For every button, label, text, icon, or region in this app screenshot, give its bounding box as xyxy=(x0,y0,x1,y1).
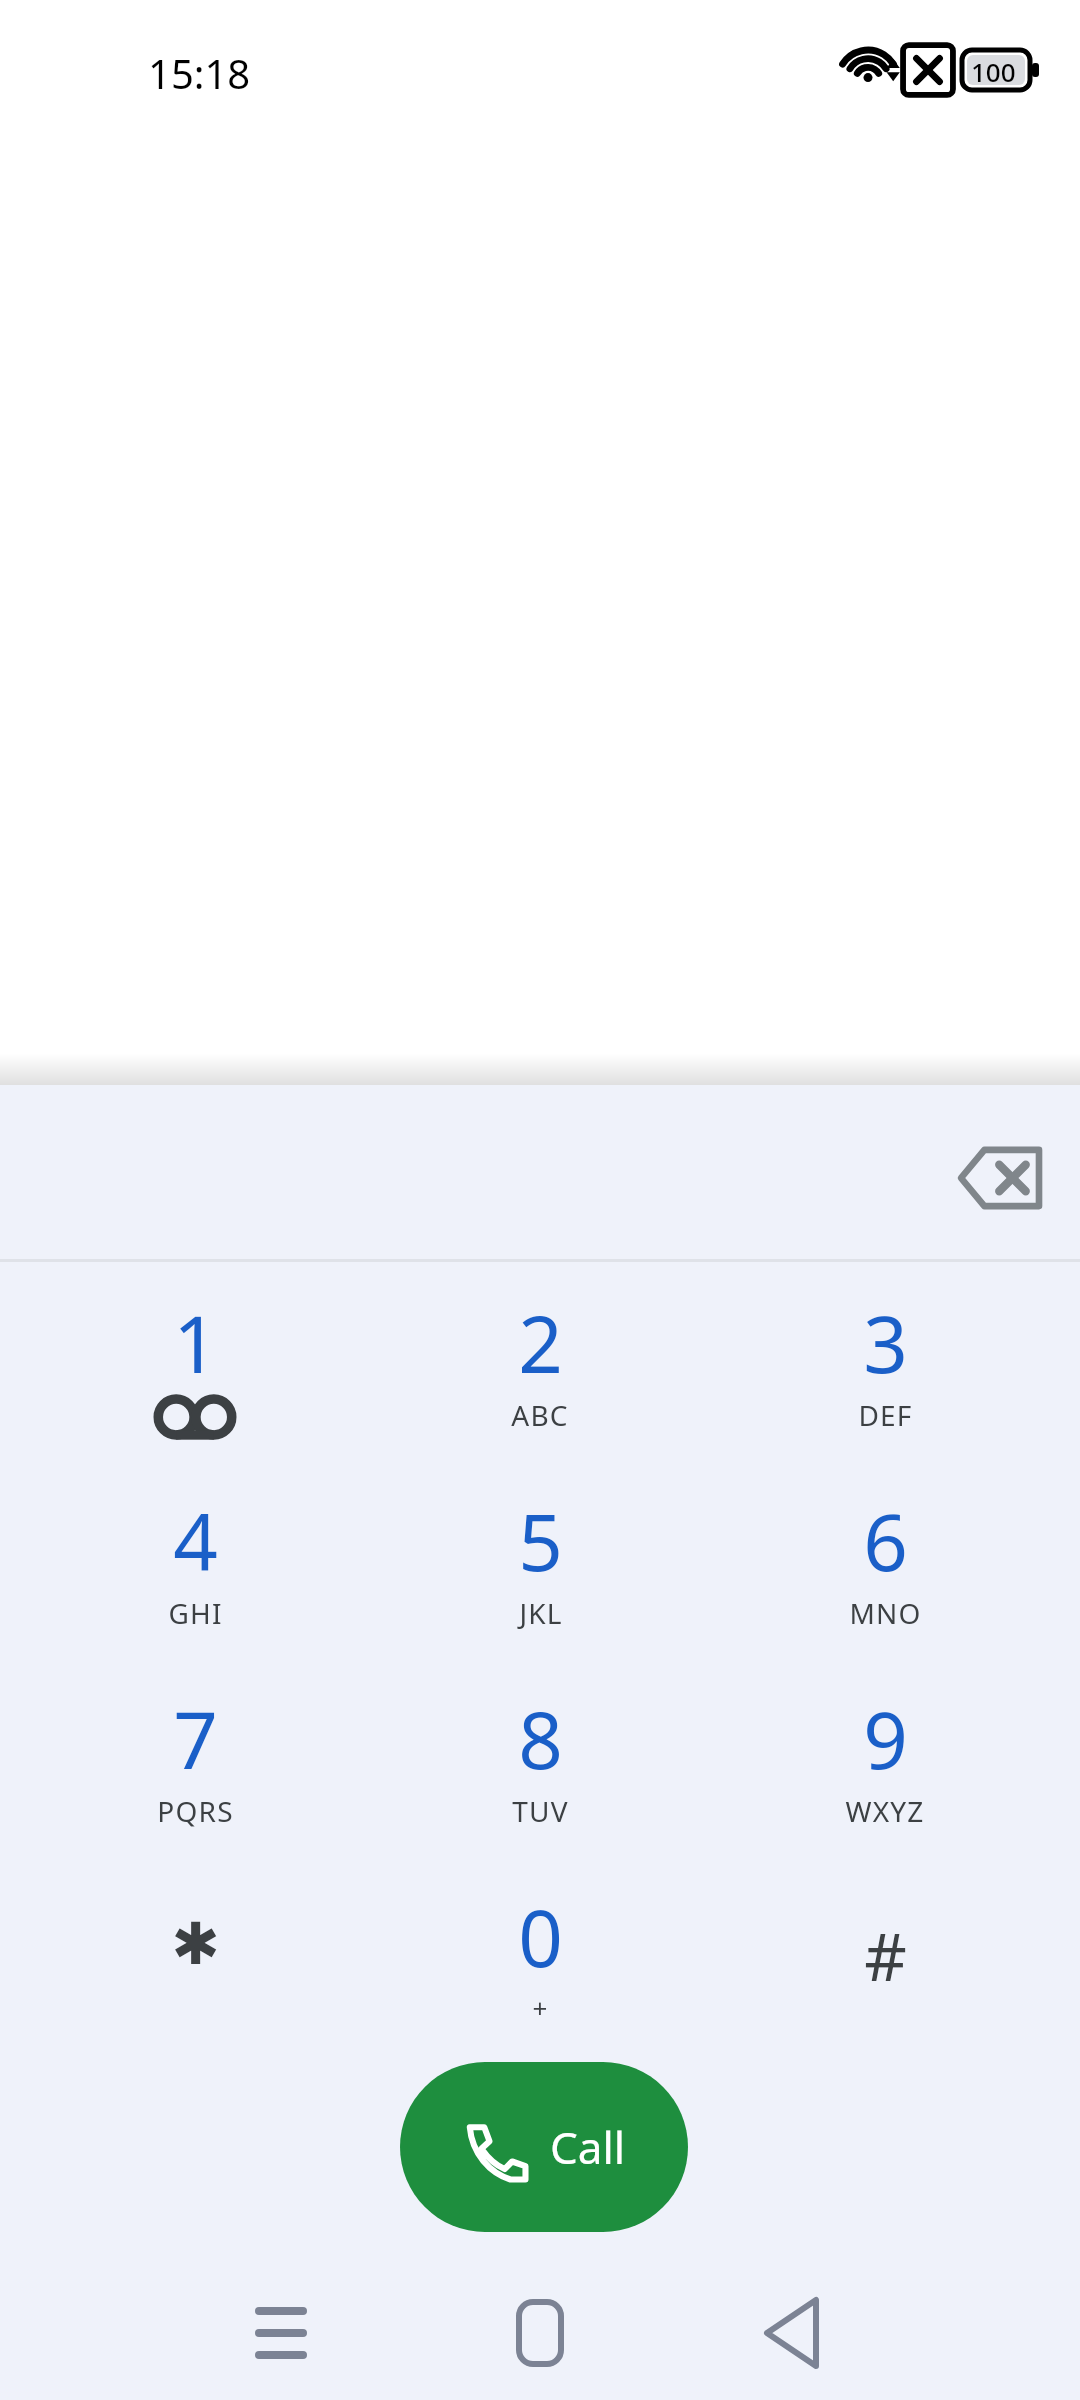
staticText: + xyxy=(532,1990,549,2025)
button[interactable]: Home xyxy=(473,2286,607,2380)
button[interactable]: Recent apps xyxy=(214,2286,348,2380)
button[interactable]: 8 xyxy=(455,1686,625,1856)
staticText: TUV xyxy=(512,1792,569,1830)
button[interactable]: Call xyxy=(400,2062,688,2232)
staticText: # xyxy=(864,1910,907,2000)
button[interactable]: 1 xyxy=(110,1290,280,1460)
staticText: 0 xyxy=(518,1884,563,1990)
staticText: ABC xyxy=(511,1396,569,1434)
staticText: PQRS xyxy=(157,1792,234,1830)
staticText: 4 xyxy=(173,1488,218,1594)
staticText: 100 xyxy=(971,54,1016,89)
button[interactable]: 9 xyxy=(800,1686,970,1856)
staticText: 7 xyxy=(173,1686,218,1792)
staticText: DEF xyxy=(858,1396,913,1434)
button[interactable]: 6 xyxy=(800,1488,970,1658)
staticText: 9 xyxy=(863,1686,908,1792)
staticText: JKL xyxy=(519,1594,563,1632)
button[interactable]: 0 xyxy=(455,1884,625,2054)
button[interactable]: Backspace xyxy=(940,1118,1060,1238)
staticText: ✱ xyxy=(171,1910,220,1978)
staticText: GHI xyxy=(168,1594,223,1632)
staticText: 6 xyxy=(863,1488,908,1594)
button[interactable]: 2 xyxy=(455,1290,625,1460)
button[interactable]: ✱ xyxy=(110,1910,280,2080)
staticText: Call xyxy=(550,2117,626,2177)
staticText: 15:18 xyxy=(148,46,251,100)
button[interactable]: 5 xyxy=(455,1488,625,1658)
staticText: 3 xyxy=(863,1290,908,1396)
button[interactable]: # xyxy=(800,1910,970,2080)
staticText: 2 xyxy=(518,1290,563,1396)
staticText: 5 xyxy=(518,1488,563,1594)
staticText: 8 xyxy=(518,1686,563,1792)
staticText: MNO xyxy=(849,1594,922,1632)
button[interactable]: Back xyxy=(730,2286,864,2380)
staticText: WXYZ xyxy=(845,1792,925,1830)
button[interactable]: 7 xyxy=(110,1686,280,1856)
button[interactable]: 4 xyxy=(110,1488,280,1658)
button[interactable]: 3 xyxy=(800,1290,970,1460)
staticText: 1 xyxy=(173,1290,218,1396)
